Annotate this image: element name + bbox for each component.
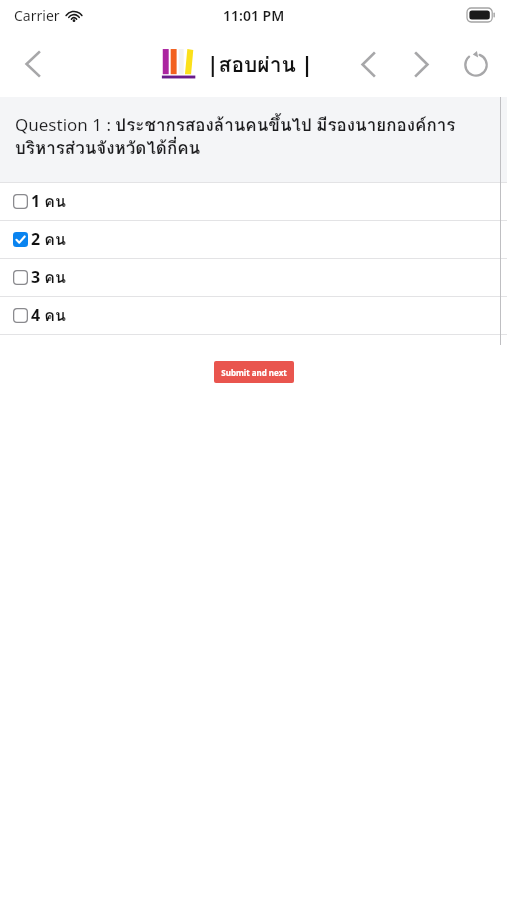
button[interactable]: 2 คน bbox=[0, 221, 507, 258]
button[interactable]: Back bbox=[8, 40, 56, 88]
staticText: Submit and next bbox=[221, 367, 287, 378]
staticText: 4 คน bbox=[31, 303, 66, 328]
button[interactable]: Reload bbox=[449, 37, 503, 91]
staticText: 11:01 PM bbox=[223, 6, 285, 25]
button[interactable]: Submit and next bbox=[214, 361, 294, 383]
staticText: 3 คน bbox=[31, 265, 66, 290]
staticText: 2 คน bbox=[31, 227, 66, 252]
button[interactable]: 1 คน bbox=[0, 183, 507, 220]
staticText: Carrier bbox=[14, 6, 60, 25]
staticText: Question 1 : ประชากรสองล้านคนขึ้นไป มีรอ… bbox=[15, 111, 487, 162]
button[interactable]: 3 คน bbox=[0, 259, 507, 296]
button[interactable]: |สอบผ่าน | bbox=[161, 47, 313, 81]
button[interactable]: 4 คน bbox=[0, 297, 507, 334]
button[interactable]: Previous question bbox=[341, 37, 395, 91]
staticText: |สอบผ่าน | bbox=[207, 48, 313, 81]
button[interactable]: Next question bbox=[395, 37, 449, 91]
staticText: 1 คน bbox=[31, 189, 66, 214]
